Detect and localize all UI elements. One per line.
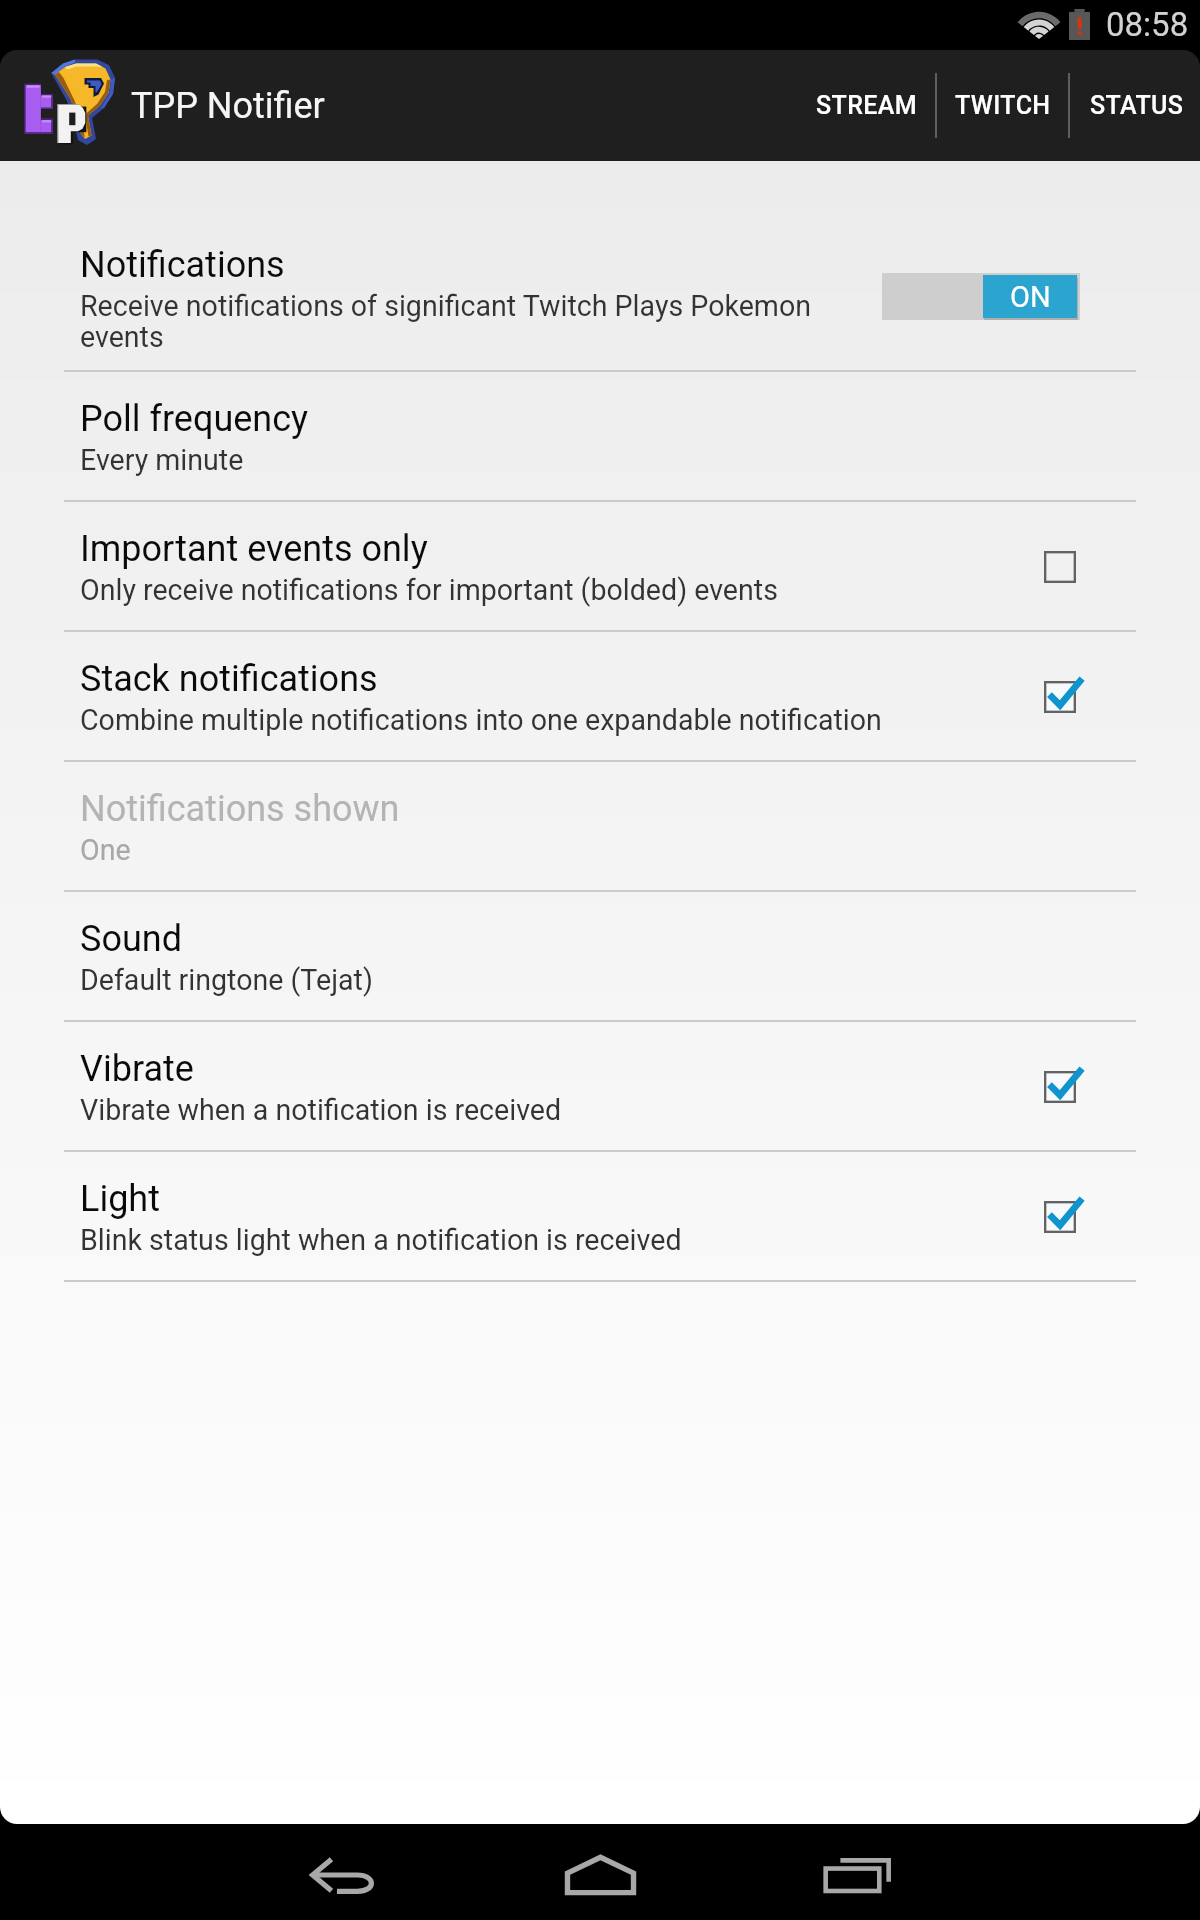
staticText: Light: [80, 1178, 160, 1220]
staticText: Important events only: [80, 528, 428, 570]
staticText: One: [80, 833, 131, 867]
staticText: Vibrate: [80, 1048, 194, 1090]
button[interactable]: Poll frequency: [0, 372, 1200, 502]
staticText: Blink status light when a notification i…: [80, 1223, 682, 1257]
button[interactable]: Checked: [1032, 1189, 1088, 1245]
button[interactable]: Notifications on: [882, 273, 1080, 320]
staticText: Only receive notifications for important…: [80, 573, 778, 607]
staticText: STREAM: [816, 91, 918, 120]
button[interactable]: Checked: [1032, 1059, 1088, 1115]
staticText: Vibrate when a notification is received: [80, 1093, 562, 1127]
staticText: Notifications shown: [80, 788, 400, 830]
button[interactable]: Notifications shown: [0, 762, 1200, 892]
button[interactable]: Home: [520, 1827, 680, 1920]
staticText: Sound: [80, 918, 182, 960]
staticText: TPP Notifier: [131, 85, 325, 127]
button[interactable]: STREAM: [795, 50, 935, 161]
button[interactable]: Back: [263, 1827, 423, 1920]
staticText: Receive notifications of significant Twi…: [80, 289, 882, 354]
staticText: Combine multiple notifications into one …: [80, 703, 882, 737]
staticText: Notifications: [80, 244, 285, 286]
staticText: Default ringtone (Tejat): [80, 963, 373, 997]
staticText: Poll frequency: [80, 398, 309, 440]
button[interactable]: Notifications: [0, 161, 1200, 372]
button[interactable]: Vibrate: [0, 1022, 1200, 1152]
button[interactable]: STATUS: [1070, 50, 1200, 161]
staticText: ON: [1010, 280, 1051, 314]
staticText: TWITCH: [955, 91, 1051, 120]
button[interactable]: TWITCH: [937, 50, 1068, 161]
staticText: Stack notifications: [80, 658, 378, 700]
button[interactable]: Important events only: [0, 502, 1200, 632]
button[interactable]: Light: [0, 1152, 1200, 1282]
button[interactable]: Unchecked: [1032, 539, 1088, 595]
button[interactable]: Recent apps: [777, 1827, 937, 1920]
button[interactable]: Sound: [0, 892, 1200, 1022]
staticText: STATUS: [1090, 91, 1184, 120]
button[interactable]: Stack notifications: [0, 632, 1200, 762]
button[interactable]: Checked: [1032, 669, 1088, 725]
staticText: Every minute: [80, 443, 244, 477]
staticText: 08:58: [1106, 5, 1189, 44]
